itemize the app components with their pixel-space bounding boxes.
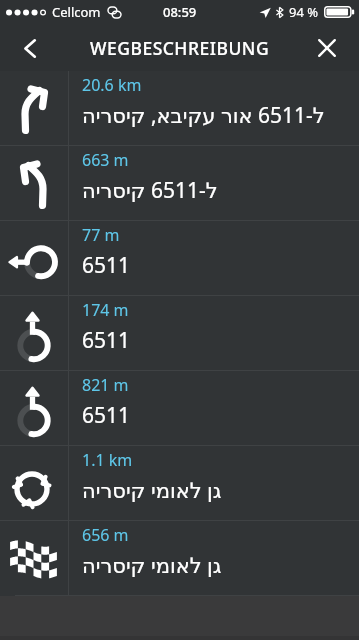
staticText: 1.1 km — [82, 449, 133, 471]
staticText: Cellcom — [52, 3, 101, 21]
staticText: ל-6511 קיסריה — [82, 176, 218, 205]
button[interactable]: 77 m — [0, 221, 359, 295]
button[interactable]: Close — [307, 28, 347, 68]
staticText: 656 m — [82, 524, 129, 546]
staticText: WEGBESCHREIBUNG — [90, 36, 270, 60]
staticText: 20.6 km — [82, 74, 142, 96]
staticText: 6511 — [82, 326, 131, 355]
button[interactable]: 1.1 km — [0, 446, 359, 520]
staticText: ל-6511 אור עקיבא, קיסריה — [82, 101, 325, 130]
staticText: 6511 — [82, 401, 131, 430]
staticText: 6511 — [82, 251, 131, 280]
button[interactable]: 663 m — [0, 146, 359, 220]
staticText: 821 m — [82, 374, 129, 396]
staticText: 663 m — [82, 149, 129, 171]
staticText: 77 m — [82, 224, 120, 246]
staticText: 08:59 — [163, 3, 197, 21]
staticText: 94 % — [289, 3, 319, 21]
button[interactable]: 174 m — [0, 296, 359, 370]
button[interactable]: 656 m — [0, 521, 359, 595]
staticText: 174 m — [82, 299, 129, 321]
staticText: גן לאומי קיסריה — [82, 551, 222, 580]
staticText: גן לאומי קיסריה — [82, 476, 222, 505]
button[interactable]: 821 m — [0, 371, 359, 445]
button[interactable]: 20.6 km — [0, 71, 359, 145]
button[interactable]: Back — [10, 28, 50, 68]
